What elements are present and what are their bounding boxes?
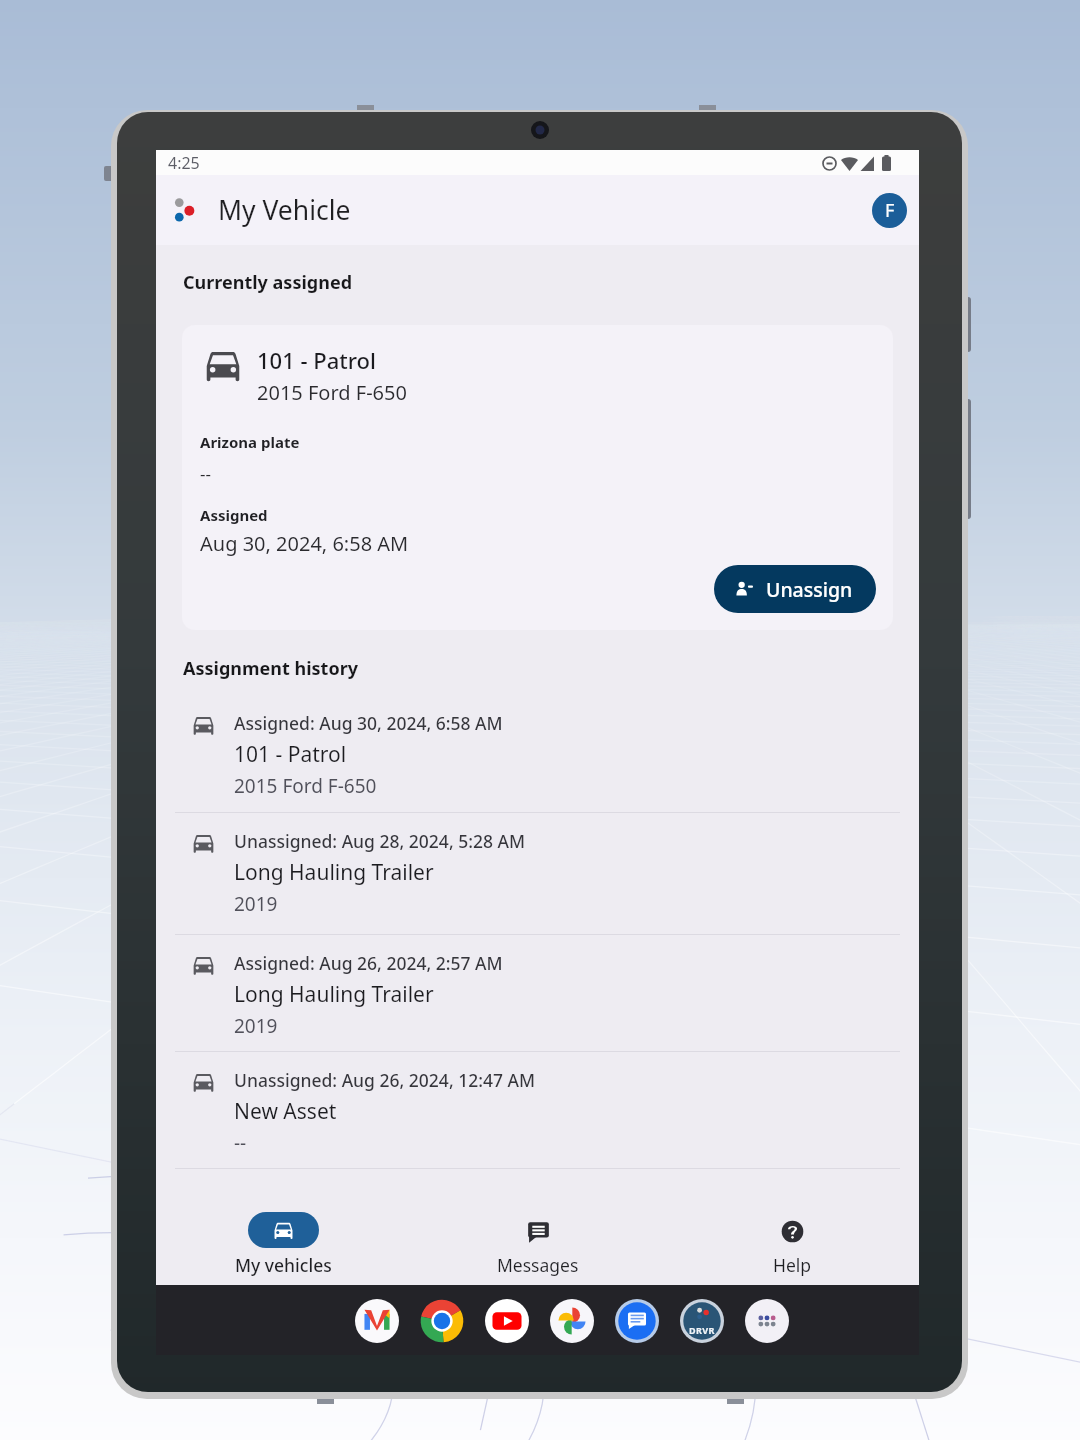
staticText: -- xyxy=(200,462,211,485)
staticText: Assigned: Aug 26, 2024, 2:57 AM xyxy=(234,951,503,975)
staticText: Long Hauling Trailer xyxy=(234,980,434,1009)
button[interactable]: Unassign xyxy=(714,565,876,613)
staticText: DRVR xyxy=(689,1324,715,1336)
staticText: F xyxy=(885,198,895,223)
staticText: 4:25 xyxy=(168,152,200,174)
staticText: Unassign xyxy=(766,576,853,603)
staticText: 101 - Patrol xyxy=(234,740,347,769)
staticText: 2015 Ford F-650 xyxy=(234,773,377,799)
staticText: Assignment history xyxy=(183,656,358,681)
staticText: Assigned xyxy=(200,505,268,525)
staticText: Long Hauling Trailer xyxy=(234,858,434,887)
staticText: 2019 xyxy=(234,1013,278,1039)
button[interactable]: DRVR xyxy=(680,1299,724,1343)
staticText: Aug 30, 2024, 6:58 AM xyxy=(200,530,409,557)
button[interactable]: Gmail xyxy=(355,1299,399,1343)
staticText: My Vehicle xyxy=(218,192,351,228)
button[interactable]: Unassigned: Aug 28, 2024, 5:28 AM xyxy=(156,813,919,935)
staticText: 2019 xyxy=(234,891,278,917)
button[interactable]: Account xyxy=(872,193,907,228)
button[interactable]: My vehicles xyxy=(156,1169,411,1277)
button[interactable]: Help xyxy=(665,1169,919,1277)
staticText: Arizona plate xyxy=(200,432,300,452)
staticText: Help xyxy=(773,1253,812,1277)
button[interactable]: Assigned: Aug 30, 2024, 6:58 AM xyxy=(156,695,919,813)
button[interactable]: Messages xyxy=(615,1299,659,1343)
staticText: -- xyxy=(234,1130,247,1156)
button[interactable]: Unassigned: Aug 26, 2024, 12:47 AM xyxy=(156,1052,919,1169)
staticText: Messages xyxy=(497,1253,579,1277)
button[interactable]: Chrome xyxy=(420,1299,464,1343)
staticText: New Asset xyxy=(234,1097,337,1126)
staticText: My vehicles xyxy=(235,1253,332,1277)
staticText: Unassigned: Aug 28, 2024, 5:28 AM xyxy=(234,829,526,853)
button[interactable]: All apps xyxy=(745,1299,789,1343)
button[interactable]: Messages xyxy=(411,1169,665,1277)
staticText: Currently assigned xyxy=(183,270,353,295)
button[interactable]: 101 - Patrol xyxy=(182,325,893,630)
staticText: 101 - Patrol xyxy=(257,345,376,375)
staticText: Unassigned: Aug 26, 2024, 12:47 AM xyxy=(234,1068,536,1092)
button[interactable]: Photos xyxy=(550,1299,594,1343)
button[interactable]: YouTube xyxy=(485,1299,529,1343)
staticText: 2015 Ford F-650 xyxy=(257,379,407,406)
button[interactable]: Assigned: Aug 26, 2024, 2:57 AM xyxy=(156,935,919,1052)
staticText: Assigned: Aug 30, 2024, 6:58 AM xyxy=(234,711,503,735)
